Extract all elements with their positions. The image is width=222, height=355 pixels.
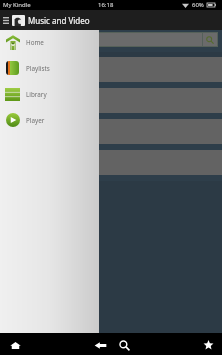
button[interactable]: Back	[89, 333, 111, 355]
button[interactable]: Open navigation drawer	[0, 10, 12, 30]
button[interactable]	[0, 150, 222, 175]
button[interactable]: Home	[4, 333, 26, 355]
staticText: My Kindle	[3, 1, 31, 9]
staticText: Music and Video	[28, 15, 90, 26]
staticText: Library	[26, 90, 47, 99]
button[interactable]: Player	[0, 107, 99, 133]
button[interactable]	[0, 88, 222, 113]
button[interactable]	[0, 119, 222, 144]
staticText: 60%	[192, 1, 204, 9]
button[interactable]: Favorites	[197, 333, 219, 355]
button[interactable]: Search	[113, 333, 135, 355]
staticText: 16:18	[98, 1, 114, 9]
button[interactable]: Search	[2, 33, 217, 46]
button[interactable]	[0, 57, 222, 82]
staticText: Player	[26, 116, 45, 125]
staticText: Home	[26, 38, 44, 47]
button[interactable]: Library	[0, 81, 99, 107]
staticText: Playlists	[26, 64, 50, 73]
button[interactable]: Search	[203, 33, 217, 46]
button[interactable]: Playlists	[0, 55, 99, 81]
button[interactable]: Home	[0, 29, 99, 55]
